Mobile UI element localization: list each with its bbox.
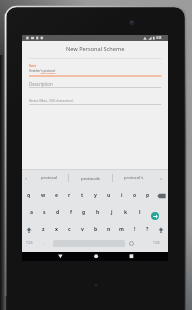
staticText: >: [25, 176, 28, 181]
button[interactable]: Description: [29, 81, 53, 87]
button[interactable]: d: [51, 204, 64, 221]
button[interactable]: l: [133, 204, 147, 221]
button[interactable]: [22, 252, 70, 261]
button[interactable]: q: [22, 187, 36, 204]
staticText: r: [68, 192, 71, 199]
button[interactable]: c: [63, 221, 76, 238]
button[interactable]: !: [128, 221, 141, 238]
staticText: protocol's: [124, 175, 144, 181]
staticText: t: [81, 192, 84, 199]
staticText: ?123: [153, 241, 160, 245]
staticText: ,: [44, 241, 45, 245]
button[interactable]: protocol: [31, 169, 68, 187]
button[interactable]: [119, 252, 168, 261]
button[interactable]: Notes (Max. 300 characters): [29, 98, 74, 103]
button[interactable]: e: [50, 187, 63, 204]
staticText: f: [70, 209, 72, 216]
button[interactable]: s: [38, 204, 51, 221]
button[interactable]: i: [115, 187, 128, 204]
button[interactable]: ?123: [153, 241, 160, 245]
staticText: n: [107, 226, 111, 233]
staticText: c: [68, 226, 71, 233]
staticText: u: [107, 192, 111, 199]
staticText: Description: [29, 81, 53, 87]
staticText: Heather's protocol: [29, 69, 56, 73]
staticText: ?123: [26, 241, 33, 245]
button[interactable]: protocols: [69, 169, 112, 187]
button[interactable]: n: [102, 221, 115, 238]
button[interactable]: ,: [44, 241, 45, 245]
button[interactable]: f: [64, 204, 77, 221]
staticText: z: [42, 226, 45, 233]
staticText: e: [55, 192, 58, 199]
button[interactable]: t: [76, 187, 89, 204]
staticText: b: [94, 226, 98, 233]
button[interactable]: b: [89, 221, 102, 238]
staticText: ?: [146, 226, 149, 233]
staticText: y: [94, 192, 97, 199]
button[interactable]: [154, 221, 168, 238]
button[interactable]: g: [77, 204, 91, 221]
button[interactable]: ∨: [155, 169, 168, 187]
button[interactable]: Name: [29, 64, 37, 68]
staticText: o: [133, 192, 137, 199]
staticText: h: [96, 209, 100, 216]
staticText: s: [43, 209, 46, 216]
button[interactable]: v: [76, 221, 89, 238]
staticText: g: [82, 209, 86, 216]
staticText: p: [146, 192, 150, 199]
staticText: New Personal Scheme: [66, 45, 125, 53]
button[interactable]: r: [63, 187, 76, 204]
staticText: -: [144, 241, 145, 244]
button[interactable]: a: [25, 204, 38, 221]
button[interactable]: w: [36, 187, 50, 204]
button[interactable]: j: [105, 204, 119, 221]
button[interactable]: >: [22, 169, 31, 187]
staticText: k: [124, 209, 128, 216]
staticText: v: [81, 226, 84, 233]
staticText: 3:38: [156, 36, 162, 40]
staticText: Name: [29, 64, 37, 68]
staticText: !: [134, 226, 136, 233]
button[interactable]: m: [115, 221, 128, 238]
button[interactable]: p: [141, 187, 154, 204]
staticText: d: [56, 209, 60, 216]
button[interactable]: z: [36, 221, 50, 238]
staticText: x: [55, 226, 58, 233]
staticText: Notes (Max. 300 characters): [29, 98, 74, 103]
staticText: i: [121, 192, 123, 199]
button[interactable]: [22, 221, 36, 238]
button[interactable]: y: [89, 187, 102, 204]
staticText: l: [139, 209, 141, 216]
staticText: q: [27, 192, 31, 199]
staticText: ∨: [160, 177, 163, 180]
staticText: a: [30, 209, 33, 216]
button[interactable]: o: [128, 187, 141, 204]
button[interactable]: [147, 204, 168, 221]
button[interactable]: h: [91, 204, 105, 221]
staticText: j: [111, 209, 113, 216]
button[interactable]: ?123: [26, 241, 33, 245]
button[interactable]: ?: [141, 221, 154, 238]
staticText: protocols: [81, 175, 100, 181]
button[interactable]: x: [50, 221, 63, 238]
button[interactable]: [70, 252, 119, 261]
button[interactable]: u: [102, 187, 115, 204]
button[interactable]: protocol's: [113, 169, 155, 187]
staticText: m: [119, 226, 124, 233]
button[interactable]: [154, 187, 168, 204]
button[interactable]: k: [119, 204, 133, 221]
staticText: w: [41, 192, 46, 199]
staticText: protocol: [41, 175, 58, 181]
